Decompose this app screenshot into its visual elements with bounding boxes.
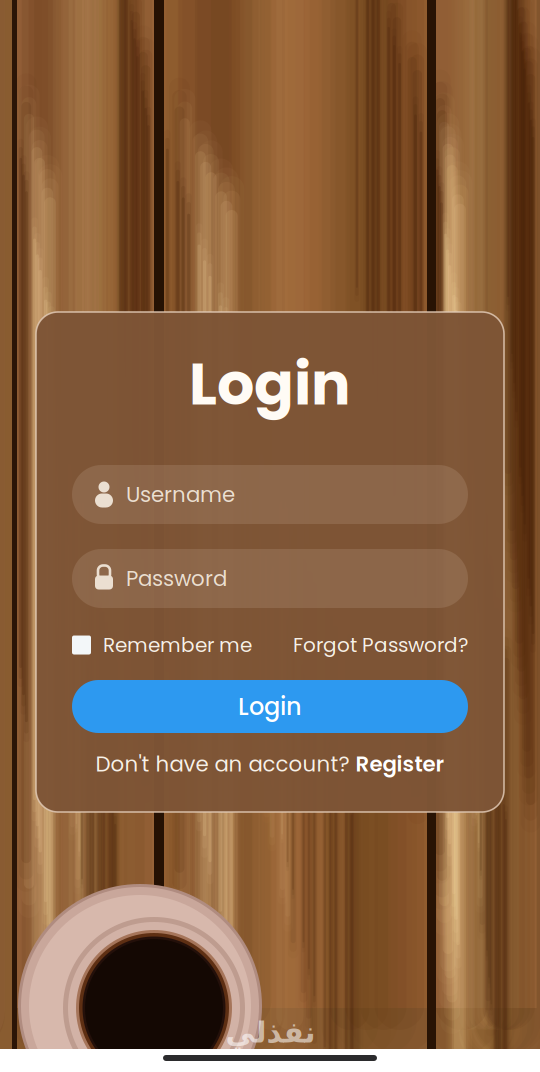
staticText: Username [126, 480, 235, 509]
button[interactable]: Forgot Password? [293, 631, 468, 659]
button[interactable]: Login [72, 680, 468, 733]
staticText: Login [238, 690, 302, 723]
button[interactable]: Password [72, 549, 468, 608]
staticText: نفذلي [225, 1015, 315, 1049]
button[interactable]: Register [355, 749, 444, 779]
button[interactable]: Username [72, 465, 468, 524]
staticText: Register [355, 749, 444, 779]
button[interactable]: Remember me [72, 631, 252, 659]
staticText: nofrzly.com [228, 1050, 311, 1071]
staticText: Login [189, 343, 351, 425]
staticText: Password [126, 564, 227, 593]
staticText: Remember me [103, 631, 252, 659]
staticText: Don't have an account? [95, 749, 355, 779]
staticText: Forgot Password? [293, 631, 468, 659]
